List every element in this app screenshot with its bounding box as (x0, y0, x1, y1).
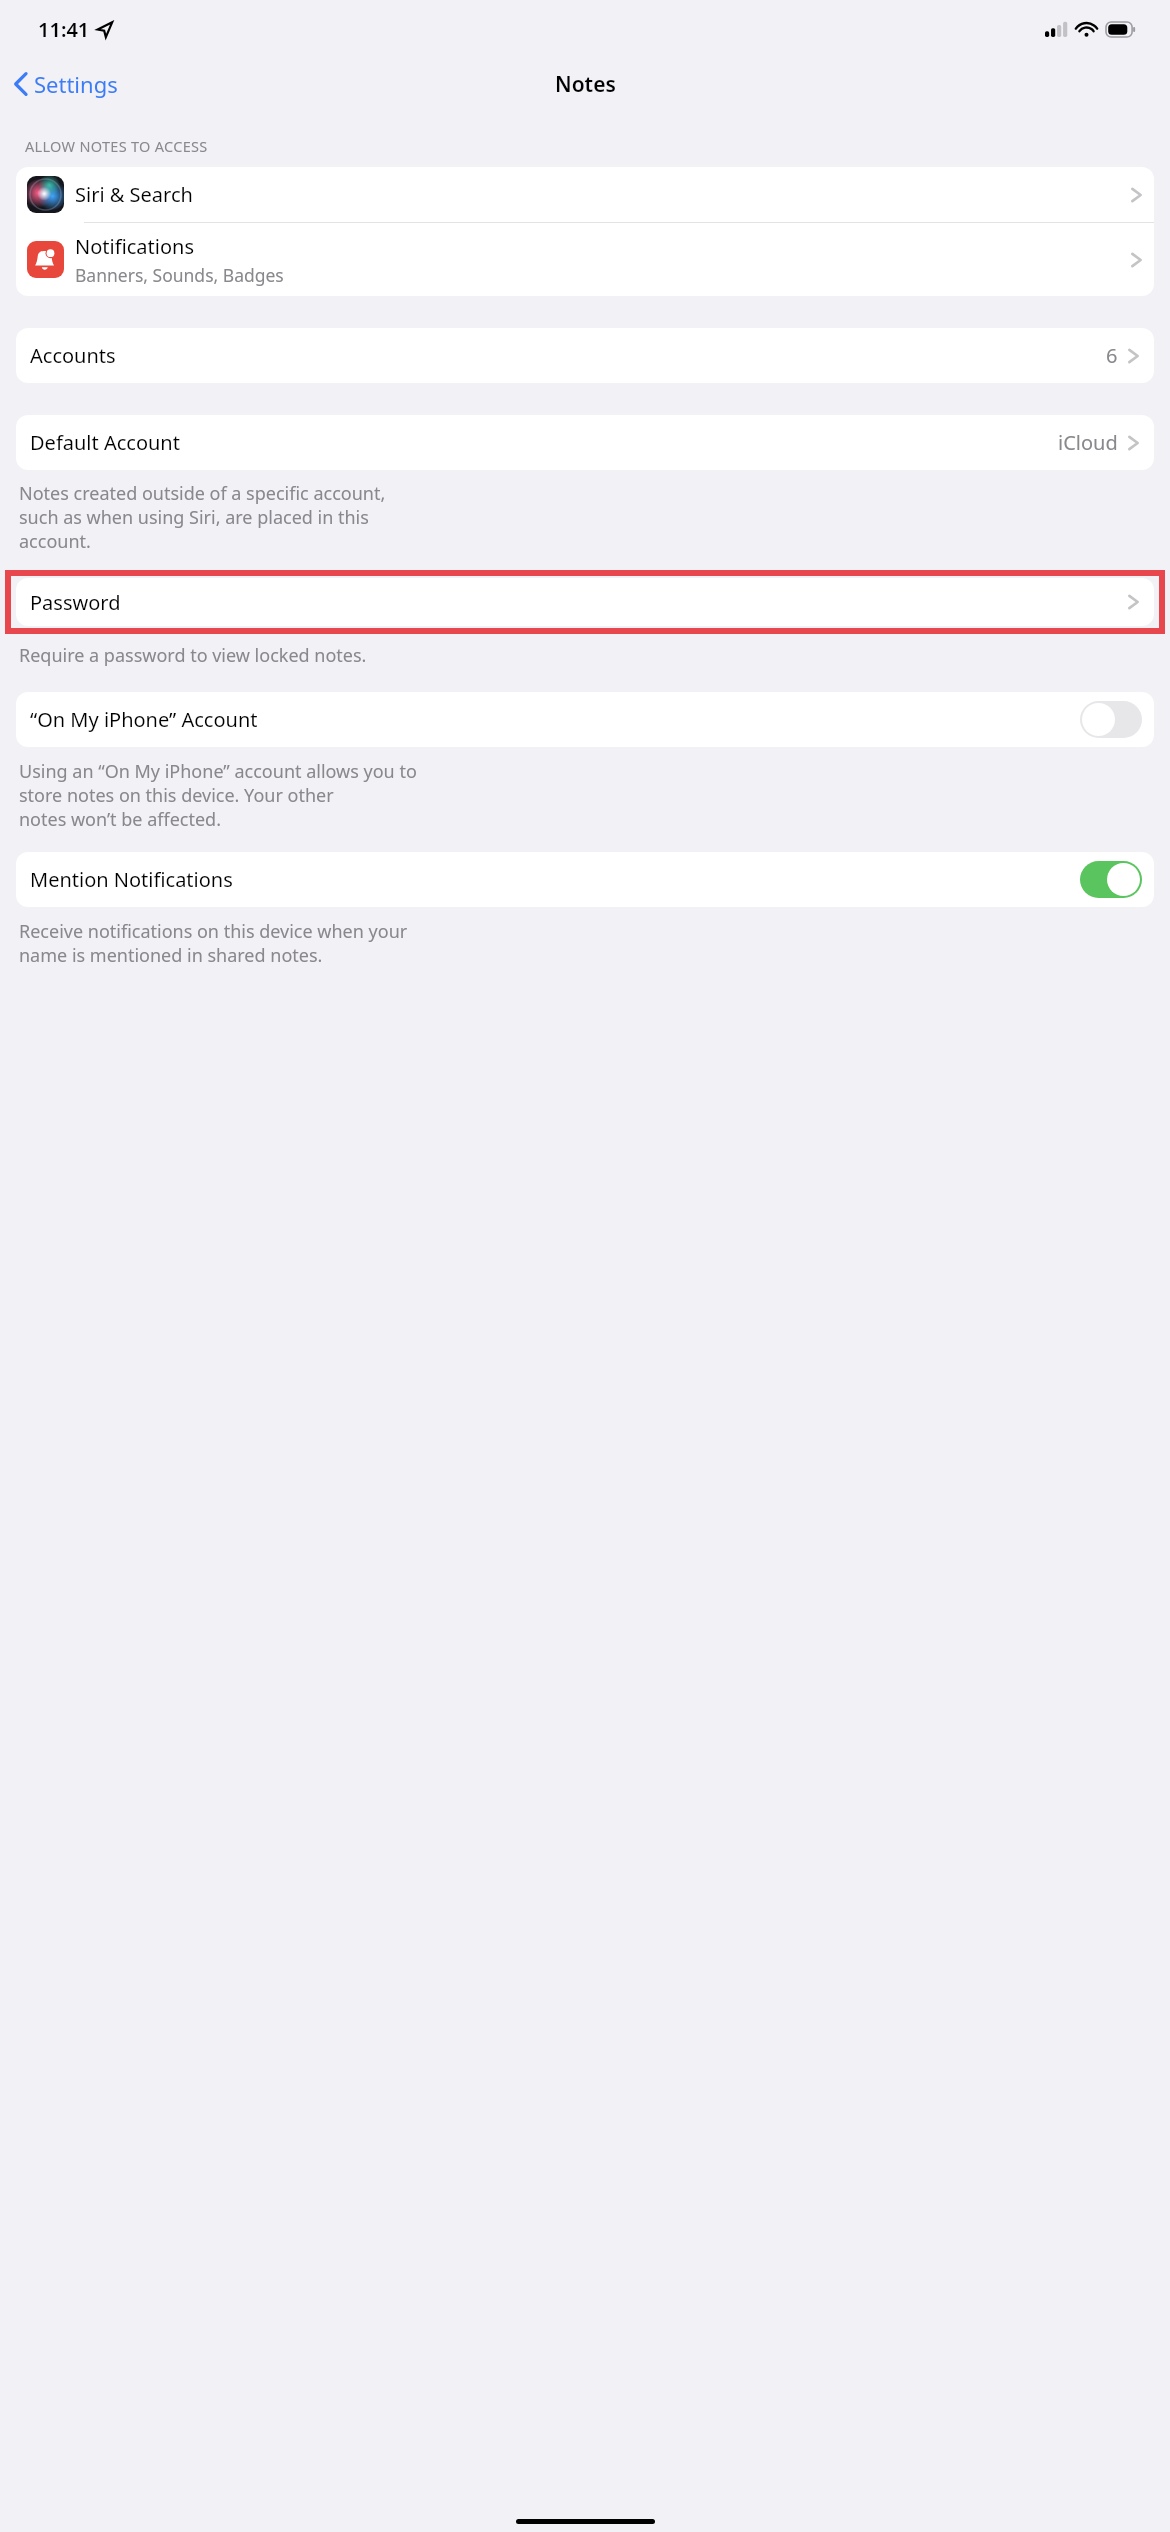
staticText: ALLOW NOTES TO ACCESS (25, 136, 208, 156)
button[interactable]: Toggle on (1080, 861, 1142, 898)
button[interactable]: Password (16, 578, 1154, 626)
button[interactable]: “On My iPhone” Account (16, 692, 1154, 747)
staticText: Receive notifications on this device whe… (19, 919, 408, 967)
staticText: Notes created outside of a specific acco… (19, 481, 386, 553)
button[interactable]: Siri & Search (16, 167, 1154, 222)
button[interactable]: Mention Notifications (16, 852, 1154, 907)
button[interactable]: Default Account (16, 415, 1154, 470)
staticText: Mention Notifications (30, 866, 233, 893)
staticText: Require a password to view locked notes. (19, 643, 367, 668)
staticText: Notifications (75, 233, 194, 260)
staticText: Siri & Search (75, 181, 193, 208)
staticText: 11:41 (38, 16, 90, 43)
staticText: 6 (1106, 342, 1118, 369)
button[interactable]: Settings (9, 65, 123, 103)
staticText: Default Account (30, 429, 180, 456)
button[interactable]: Toggle off (1080, 701, 1142, 738)
button[interactable]: Notifications (16, 223, 1154, 296)
staticText: Using an “On My iPhone” account allows y… (19, 759, 417, 831)
staticText: Accounts (30, 342, 116, 369)
staticText: iCloud (1058, 429, 1118, 456)
staticText: Banners, Sounds, Badges (75, 263, 284, 287)
staticText: Settings (34, 69, 118, 99)
staticText: “On My iPhone” Account (30, 706, 258, 733)
button[interactable]: Accounts (16, 328, 1154, 383)
staticText: Password (30, 589, 121, 616)
staticText: Notes (555, 70, 616, 99)
